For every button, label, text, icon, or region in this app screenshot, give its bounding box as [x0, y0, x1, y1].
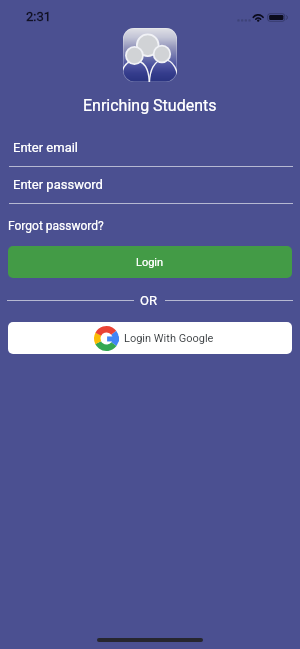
staticText: Enter password [13, 177, 103, 192]
staticText: Enriching Students [83, 96, 217, 115]
button[interactable]: Login [8, 246, 292, 278]
staticText: Login [136, 256, 164, 269]
button[interactable]: Enter email [13, 140, 79, 155]
staticText: Forgot password? [8, 219, 104, 233]
staticText: 2:31 [26, 9, 52, 24]
button[interactable]: Enter password [13, 177, 103, 192]
staticText: Login With Google [124, 332, 214, 345]
button[interactable]: Forgot password? [8, 219, 104, 233]
button[interactable]: Login With Google [8, 322, 292, 354]
staticText: Enter email [13, 140, 79, 155]
staticText: OR [140, 293, 157, 308]
